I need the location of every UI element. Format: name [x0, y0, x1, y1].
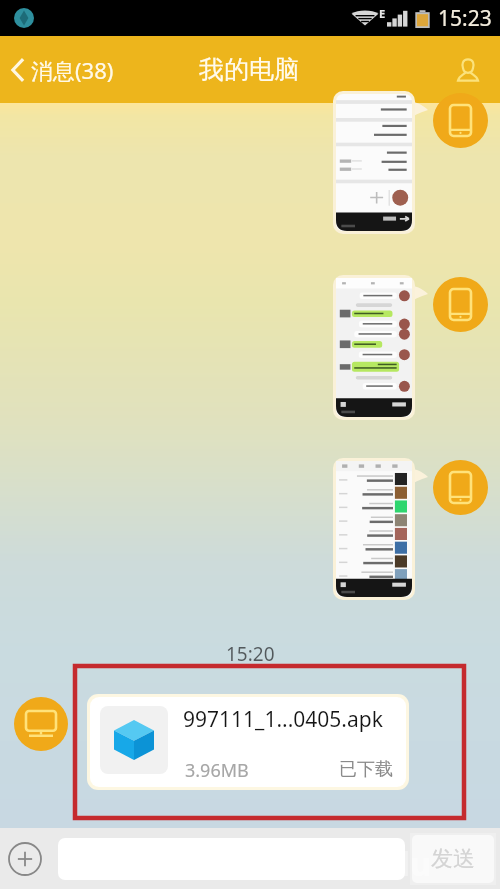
staticText: 15:20 — [226, 641, 275, 667]
button[interactable]: 发送 — [412, 835, 494, 883]
staticText: 15:23 — [438, 4, 492, 33]
button[interactable]: Profile — [448, 50, 488, 90]
staticText: 997111_1...0405.apk — [183, 705, 383, 734]
button[interactable]: Phone avatar — [433, 93, 488, 148]
staticText: 消息(38) — [31, 55, 114, 85]
button[interactable]: Phone avatar — [433, 277, 488, 332]
button[interactable]: Phone avatar — [433, 460, 488, 515]
staticText: 发送 — [431, 845, 475, 873]
button[interactable]: Screenshot image — [333, 275, 415, 420]
button[interactable]: 997111_1...0405.apk — [87, 694, 409, 790]
button[interactable]: Computer avatar — [14, 697, 68, 751]
button[interactable]: Add attachment — [6, 840, 43, 877]
staticText: Baidu — [340, 842, 432, 886]
staticText: 3.96MB — [185, 758, 249, 783]
button[interactable]: 消息(38) — [0, 49, 124, 91]
staticText: 已下载 — [339, 758, 393, 781]
staticText: 我的电脑 — [199, 54, 299, 85]
button[interactable]: Screenshot image — [333, 91, 415, 234]
staticText: E — [379, 6, 386, 21]
button[interactable]: Screenshot image — [333, 458, 415, 600]
